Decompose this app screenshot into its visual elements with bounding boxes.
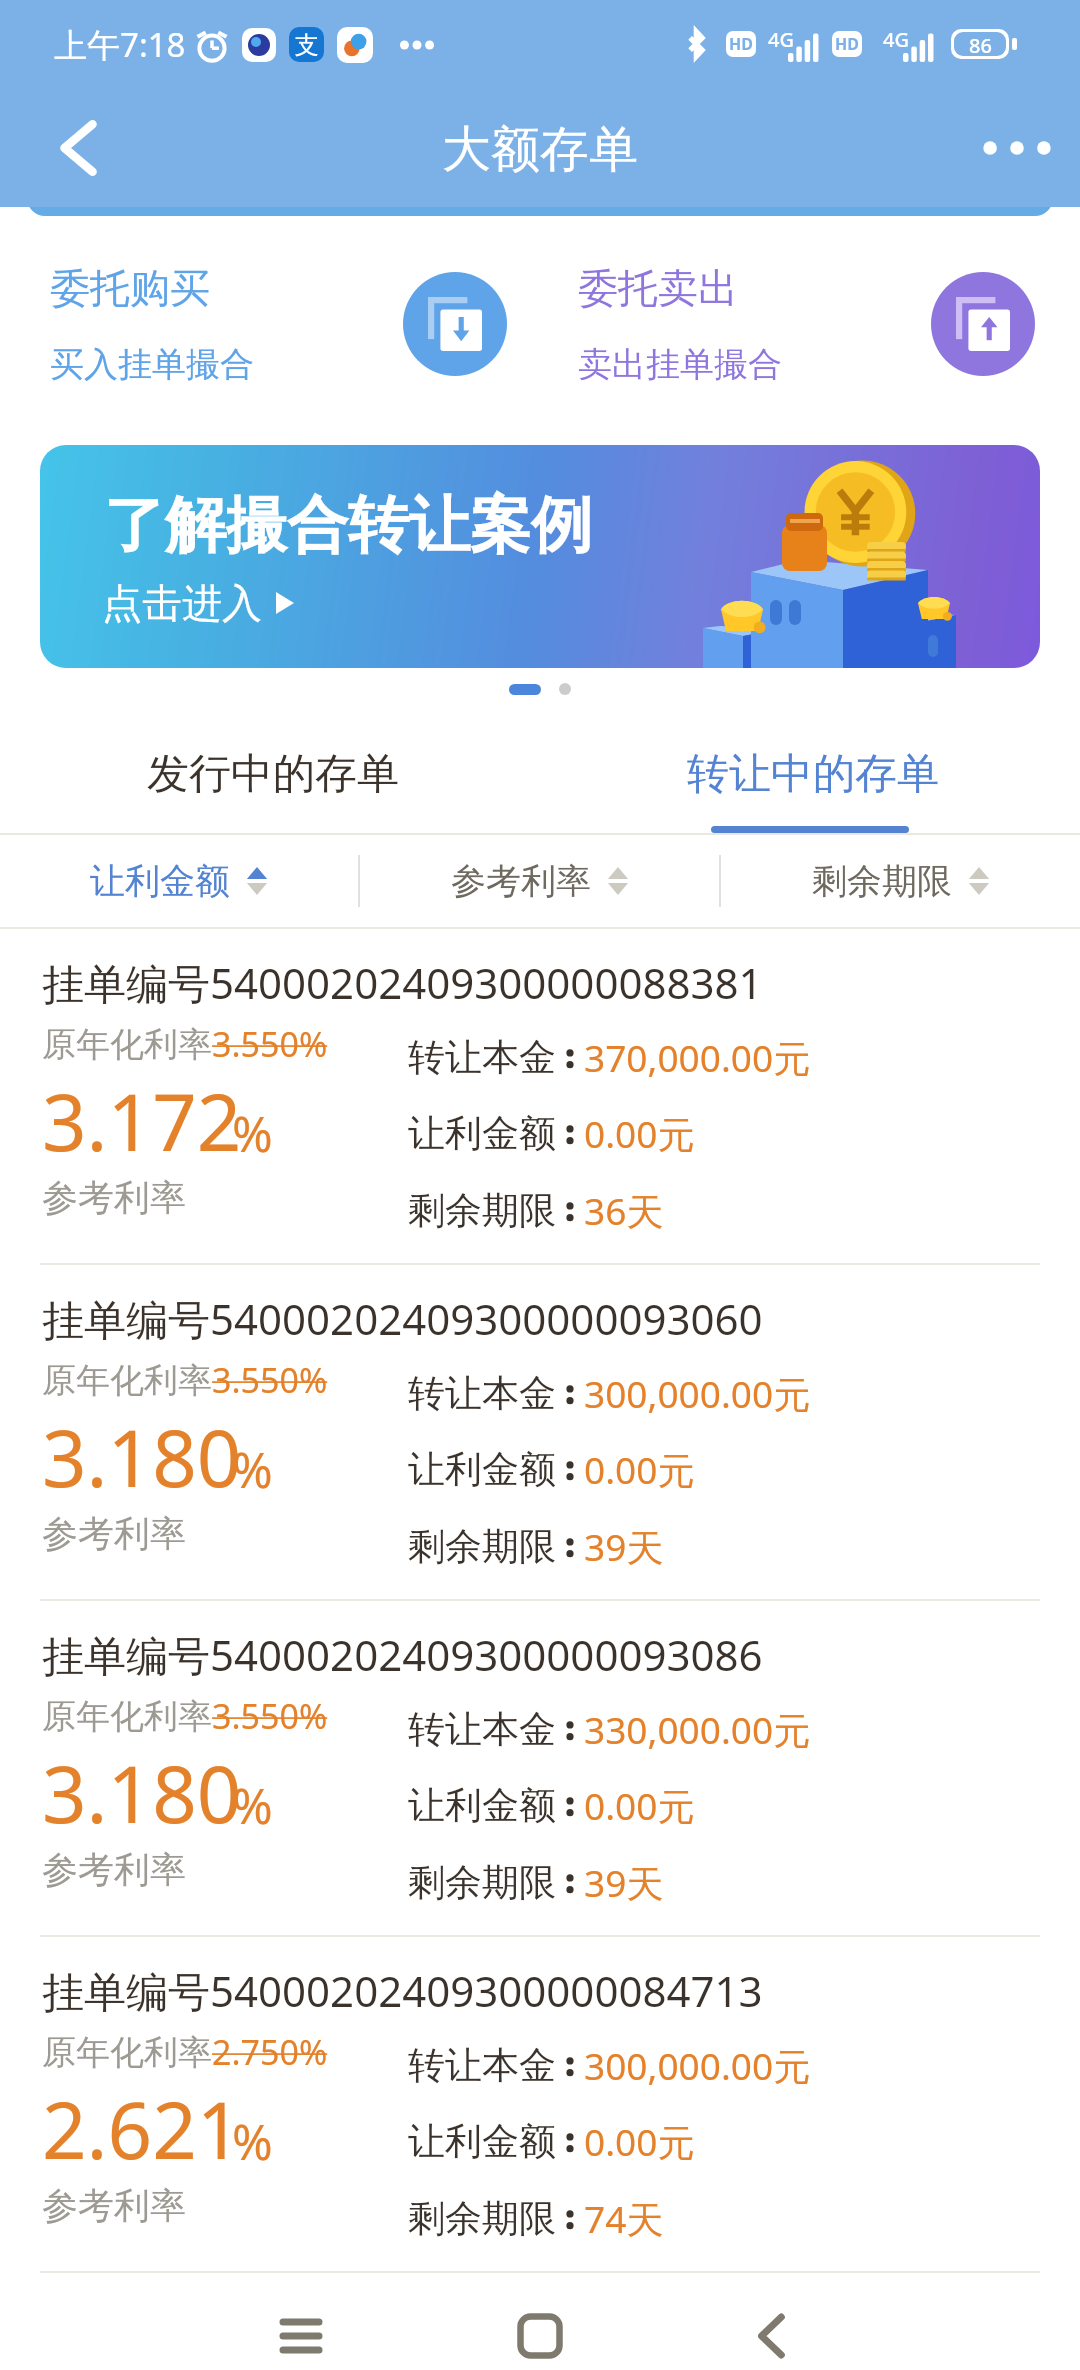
staticText: 参考利率 (42, 2183, 186, 2228)
staticText: 转让本金 (408, 1034, 556, 1081)
staticText: 剩余期限 (408, 1859, 556, 1906)
button[interactable]: 了解撮合转让案例 (40, 445, 1040, 668)
staticText: 挂单编号54000202409300000093086 (42, 1626, 763, 1683)
staticText: 剩余期限 (408, 1523, 556, 1570)
staticText: % (232, 1436, 273, 1503)
staticText: 36天 (584, 1185, 664, 1236)
staticText: 买入挂单撮合 (50, 343, 254, 386)
button[interactable]: Recent apps (258, 2293, 344, 2370)
staticText: 大额存单 (442, 119, 638, 181)
staticText: HD (835, 33, 859, 55)
staticText: 原年化利率 (42, 1359, 212, 1402)
staticText: HD (729, 33, 753, 55)
staticText: 300,000.00元 (584, 1368, 811, 1419)
button[interactable]: 挂单编号54000202409300000088381 (0, 929, 1080, 1263)
button[interactable]: Home (497, 2293, 583, 2370)
staticText: 3.550% (212, 1693, 328, 1739)
staticText: 了解撮合转让案例 (104, 487, 592, 564)
button[interactable]: 让利金额 (0, 835, 358, 927)
staticText: 挂单编号54000202409300000088381 (42, 954, 763, 1011)
button[interactable]: Back (40, 112, 112, 184)
staticText: 剩余期限 (408, 2195, 556, 2242)
staticText: 0.00元 (584, 1444, 695, 1495)
button[interactable]: Back (728, 2293, 814, 2370)
staticText: 剩余期限 (408, 1187, 556, 1234)
staticText: 4G (768, 26, 794, 53)
staticText: % (232, 2108, 273, 2175)
staticText: 2.750% (212, 2029, 328, 2075)
staticText: 300,000.00元 (584, 2040, 811, 2091)
button[interactable]: 委托卖出 (540, 216, 1080, 445)
button[interactable]: 委托购买 (0, 216, 540, 445)
staticText: 参考利率 (451, 859, 591, 903)
staticText: 委托卖出 (578, 263, 738, 313)
button[interactable]: 转让中的存单 (540, 710, 1080, 833)
staticText: 让利金额 (408, 1110, 556, 1157)
staticText: 转让本金 (408, 2042, 556, 2089)
staticText: 3.172 (42, 1068, 242, 1174)
button[interactable]: More options (978, 109, 1056, 187)
staticText: 让利金额 (408, 1782, 556, 1829)
staticText: 3.180 (42, 1740, 242, 1846)
staticText: 挂单编号54000202409300000084713 (42, 1962, 763, 2019)
staticText: 3.550% (212, 1021, 328, 1067)
staticText: 转让中的存单 (687, 748, 939, 801)
button[interactable]: 发行中的存单 (0, 710, 540, 833)
staticText: 让利金额 (408, 2118, 556, 2165)
staticText: 74天 (584, 2193, 664, 2244)
staticText: 39天 (584, 1857, 664, 1908)
staticText: 卖出挂单撮合 (578, 343, 782, 386)
staticText: 原年化利率 (42, 1695, 212, 1738)
staticText: 2.621 (42, 2076, 242, 2182)
staticText: % (232, 1772, 273, 1839)
staticText: 参考利率 (42, 1511, 186, 1556)
staticText: 转让本金 (408, 1370, 556, 1417)
staticText: 转让本金 (408, 1706, 556, 1753)
staticText: 剩余期限 (812, 859, 952, 903)
staticText: 让利金额 (408, 1446, 556, 1493)
staticText: 发行中的存单 (147, 748, 399, 801)
staticText: 上午7:18 (54, 22, 186, 67)
staticText: 86 (969, 32, 992, 56)
staticText: 参考利率 (42, 1847, 186, 1892)
staticText: 0.00元 (584, 1108, 695, 1159)
staticText: 原年化利率 (42, 2031, 212, 2074)
staticText: 3.180 (42, 1404, 242, 1510)
staticText: 让利金额 (90, 859, 230, 903)
staticText: 原年化利率 (42, 1023, 212, 1066)
staticText: 3.550% (212, 1357, 328, 1403)
staticText: 330,000.00元 (584, 1704, 811, 1755)
button[interactable]: 挂单编号54000202409300000093060 (0, 1265, 1080, 1599)
staticText: 参考利率 (42, 1175, 186, 1220)
staticText: % (232, 1100, 273, 1167)
staticText: 0.00元 (584, 2116, 695, 2167)
staticText: 370,000.00元 (584, 1032, 811, 1083)
button[interactable]: 参考利率 (360, 835, 719, 927)
staticText: 4G (883, 26, 909, 53)
button[interactable]: 挂单编号54000202409300000093086 (0, 1601, 1080, 1935)
button[interactable]: Banner page 1 (509, 684, 541, 695)
staticText: 39天 (584, 1521, 664, 1572)
button[interactable]: 剩余期限 (721, 835, 1080, 927)
staticText: 委托购买 (50, 263, 210, 313)
staticText: 挂单编号54000202409300000093060 (42, 1290, 763, 1347)
staticText: 0.00元 (584, 1780, 695, 1831)
staticText: 点击进入 (102, 578, 262, 628)
staticText: 支 (295, 30, 319, 60)
button[interactable]: Banner page 2 (559, 683, 571, 695)
button[interactable]: 挂单编号54000202409300000084713 (0, 1937, 1080, 2271)
